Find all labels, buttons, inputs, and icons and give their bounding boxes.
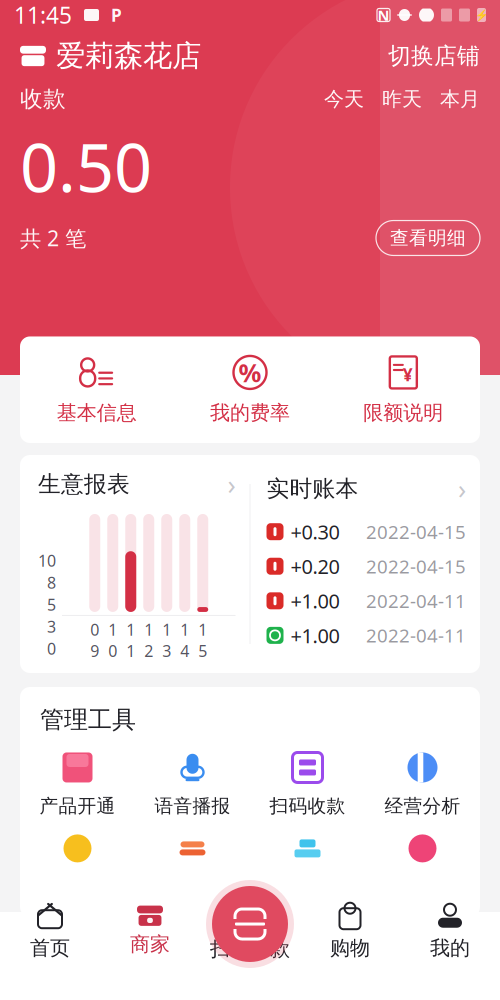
staticText: 管理工具 [40,705,136,734]
staticText: P [111,3,122,26]
button[interactable]: 实时账本 [266,471,466,506]
staticText: 切换店铺 [388,42,480,70]
staticText: 限额说明 [363,400,443,425]
staticText: 语音播报 [154,794,230,817]
staticText: 2022-04-15 [366,554,466,579]
staticText: 2022-04-15 [366,519,466,544]
staticText: ⚡ [475,9,488,21]
staticText: 昨天 [382,87,422,111]
staticText: N [377,5,389,25]
staticText: ¥ [403,363,413,386]
staticText: 商家 [130,932,170,957]
staticText: 收款 [20,85,66,113]
button[interactable]: 商家 [100,905,200,957]
staticText: 2022-04-11 [366,588,466,613]
button[interactable]: 昨天 [382,87,422,111]
button[interactable]: 购物 [300,902,400,960]
staticText: 5 [47,594,56,615]
staticText: 10 [38,550,56,571]
button[interactable]: 今天 [324,87,364,111]
button[interactable] [135,829,250,867]
staticText: › [227,466,235,502]
staticText: % [238,356,261,389]
button[interactable]: 本月 [440,87,480,111]
staticText: 0.50 [20,122,152,210]
staticText: 共 2 笔 [20,224,86,252]
staticText: 本月 [440,87,480,111]
staticText: 09 [90,619,99,661]
staticText: 今天 [324,87,364,111]
staticText: +1.00 [290,622,339,649]
staticText: 查看明细 [390,226,466,249]
staticText: 首页 [30,936,70,960]
staticText: 12 [144,619,153,661]
staticText: 产品开通 [39,794,115,817]
button[interactable]: % [173,354,327,425]
staticText: 生意报表 [38,470,130,498]
staticText: 3 [47,616,56,637]
button[interactable]: 扫码付款 [206,880,294,968]
button[interactable] [20,829,135,867]
staticText: 14 [180,619,189,661]
button[interactable]: 经营分析 [365,748,480,817]
staticText: +0.30 [290,518,339,545]
button[interactable] [250,829,365,867]
staticText: 实时账本 [266,475,358,503]
staticText: 2022-04-11 [366,623,466,648]
staticText: 8 [47,572,56,593]
staticText: +0.20 [290,553,339,580]
staticText: 购物 [330,936,370,960]
staticText: +1.00 [290,587,339,614]
staticText: 爱莉森花店 [56,38,201,74]
staticText: 0 [47,638,56,659]
button[interactable]: 首页 [0,902,100,960]
staticText: 11 [126,619,135,661]
staticText: 11:45 [14,0,72,30]
staticText: 经营分析 [384,794,460,817]
staticText: 我的 [430,936,470,960]
staticText: 基本信息 [57,400,137,425]
button[interactable]: 扫码收款 [250,748,365,817]
staticText: › [458,471,466,506]
staticText: 我的费率 [210,400,290,425]
button[interactable]: ¥ [327,354,480,425]
staticText: 10 [108,619,117,661]
button[interactable]: 产品开通 [20,748,135,817]
button[interactable]: 切换店铺 [388,42,480,70]
button[interactable]: 我的 [400,902,500,960]
button[interactable]: 语音播报 [135,748,250,817]
staticText: 13 [162,619,171,661]
staticText: 扫码收款 [269,794,345,817]
button[interactable] [365,829,480,867]
button[interactable]: 生意报表 [38,466,235,502]
staticText: 扫码付款 [210,937,290,961]
staticText: 15 [198,619,207,661]
button[interactable]: 扫码付款 [200,901,300,961]
button[interactable]: 查看明细 [376,220,480,255]
button[interactable]: 爱莉森花店 [20,38,201,74]
button[interactable]: 基本信息 [20,354,173,425]
